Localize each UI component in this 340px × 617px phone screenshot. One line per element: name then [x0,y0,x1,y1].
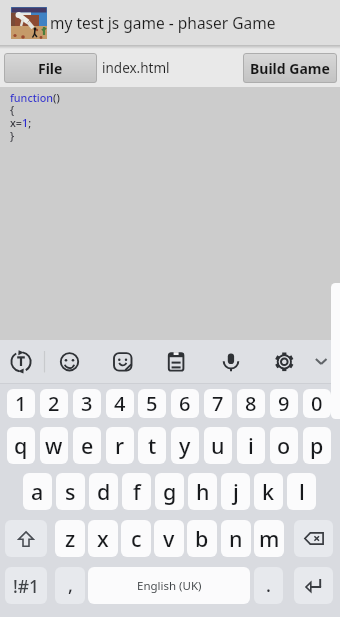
staticText: z [65,524,76,553]
button[interactable]: l [287,473,316,510]
button[interactable]: d [89,473,118,510]
button[interactable]: m [254,520,284,557]
button[interactable]: y [171,427,199,464]
button[interactable]: English (UK) [88,567,250,604]
button[interactable]: t [138,427,166,464]
staticText: 6 [179,390,191,417]
staticText: e [81,431,94,460]
button[interactable]: f [122,473,151,510]
button[interactable]: w [40,427,68,464]
staticText: index.html [102,59,170,77]
staticText: my test js game - phaser Game [50,12,276,33]
button[interactable]: 4 [106,389,134,418]
staticText: p [310,431,324,460]
button[interactable]: !#1 [5,567,47,604]
staticText: t [148,431,157,460]
button[interactable]: i [237,427,265,464]
button[interactable] [270,347,298,375]
button[interactable]: u [204,427,232,464]
button[interactable] [5,520,47,557]
button[interactable]: s [56,473,85,510]
button[interactable] [307,347,335,375]
button[interactable]: File [4,53,97,83]
button[interactable] [294,567,333,604]
staticText: h [196,477,210,506]
staticText: !#1 [13,574,40,598]
button[interactable]: 8 [237,389,265,418]
button[interactable]: v [154,520,184,557]
staticText: 8 [245,390,257,417]
button[interactable]: a [23,473,52,510]
staticText: i [248,431,254,460]
button[interactable]: c [121,520,151,557]
button[interactable]: 2 [40,389,68,418]
staticText: n [229,524,243,553]
button[interactable] [162,347,190,375]
staticText: Build Game [250,59,330,78]
staticText: r [115,431,125,460]
button[interactable] [294,520,333,557]
staticText: 7 [212,390,224,417]
button[interactable]: 5 [138,389,166,418]
staticText: a [31,477,44,506]
button[interactable]: . [254,567,283,604]
button[interactable]: z [55,520,85,557]
button[interactable]: 1 [7,389,35,418]
staticText: k [262,477,275,506]
button[interactable] [109,347,137,375]
staticText: 2 [48,390,60,417]
staticText: 5 [146,390,158,417]
staticText: w [45,431,63,460]
button[interactable]: 0 [303,389,331,418]
staticText: c [131,524,142,553]
staticText: o [277,431,291,460]
button[interactable] [56,347,84,375]
staticText: File [38,59,63,78]
staticText: y [179,431,191,460]
button[interactable]: o [270,427,298,464]
button[interactable]: j [221,473,250,510]
button[interactable]: q [7,427,35,464]
staticText: b [195,524,209,553]
button[interactable] [7,347,35,375]
button[interactable]: g [155,473,184,510]
staticText: q [14,431,28,460]
button[interactable]: Build Game [243,53,337,83]
button[interactable]: , [55,567,85,604]
staticText: , [68,573,73,598]
button[interactable]: 6 [171,389,199,418]
button[interactable]: h [188,473,217,510]
staticText: m [259,524,280,553]
staticText: 1 [15,390,27,417]
button[interactable]: 7 [204,389,232,418]
button[interactable]: b [187,520,217,557]
staticText: 9 [278,390,290,417]
button[interactable]: k [254,473,283,510]
staticText: x [97,524,109,553]
button[interactable]: 3 [73,389,101,418]
button[interactable] [217,347,245,375]
button[interactable]: index.html [102,53,170,83]
staticText: s [65,477,76,506]
button[interactable]: x [88,520,118,557]
staticText: v [163,524,175,553]
button[interactable]: e [73,427,101,464]
button[interactable]: n [221,520,251,557]
button[interactable]: p [303,427,331,464]
staticText: u [211,431,225,460]
staticText: English (UK) [137,578,202,594]
staticText: g [163,477,177,506]
button[interactable]: 9 [270,389,298,418]
staticText: l [299,477,305,506]
staticText: . [266,573,271,598]
staticText: j [233,477,239,506]
staticText: f [133,477,141,506]
staticText: 4 [114,390,126,417]
staticText: 3 [81,390,93,417]
staticText: function() { x=1; } [10,90,60,143]
staticText: d [97,477,111,506]
staticText: 0 [311,390,323,417]
button[interactable]: r [106,427,134,464]
